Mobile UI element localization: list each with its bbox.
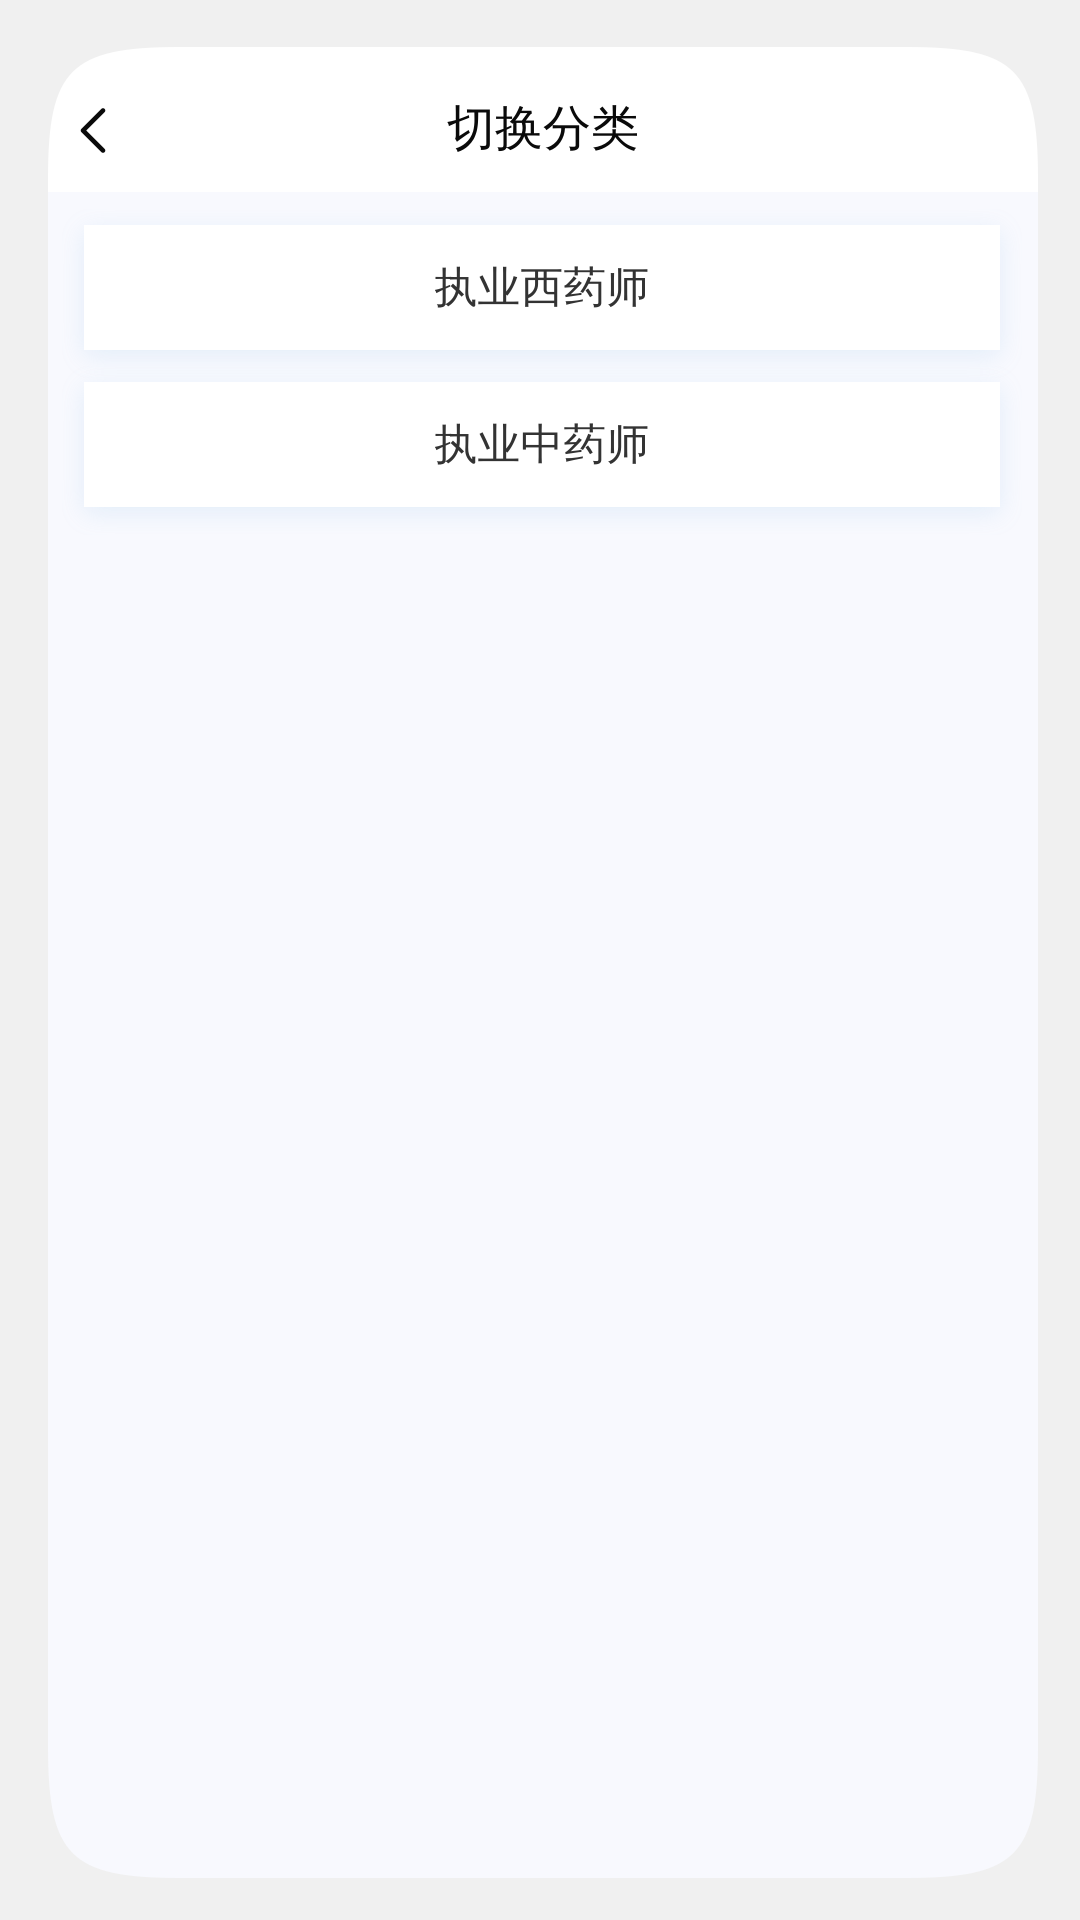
staticText: 执业中药师 [434,418,649,471]
staticText: 执业西药师 [434,261,649,314]
button[interactable]: 执业中药师 [84,382,1000,507]
staticText: 切换分类 [447,99,639,158]
button[interactable]: 执业西药师 [84,225,1000,350]
button[interactable]: Back [48,47,132,191]
